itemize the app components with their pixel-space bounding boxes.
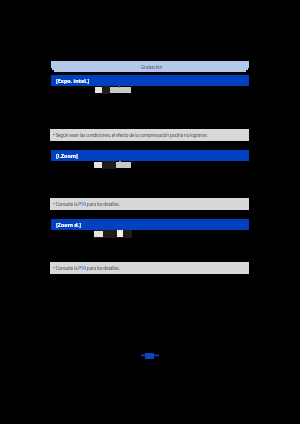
staticText: [Expo. intel.] [56, 77, 90, 84]
button[interactable]: • Consulte la P54 para los detalles. [50, 262, 249, 274]
button[interactable]: Page 53 [138, 348, 162, 362]
staticText: • Según sean las condiciones, el efecto … [53, 132, 208, 139]
button[interactable]: Grabación [51, 61, 249, 72]
button[interactable]: [Zoom d.] [51, 219, 249, 230]
staticText: • Consulte la P54 para los detalles. [53, 265, 120, 272]
button[interactable]: • Según sean las condiciones, el efecto … [50, 129, 249, 141]
button[interactable]: [Expo. intel.] [51, 75, 249, 86]
staticText: • Consulte la P54 para los detalles. [53, 201, 120, 208]
button[interactable]: [i.Zoom] [51, 150, 249, 161]
staticText: [i.Zoom] [56, 152, 78, 159]
staticText: [Zoom d.] [56, 221, 82, 228]
staticText: Grabación [141, 64, 163, 70]
button[interactable]: • Consulte la P54 para los detalles. [50, 198, 249, 210]
